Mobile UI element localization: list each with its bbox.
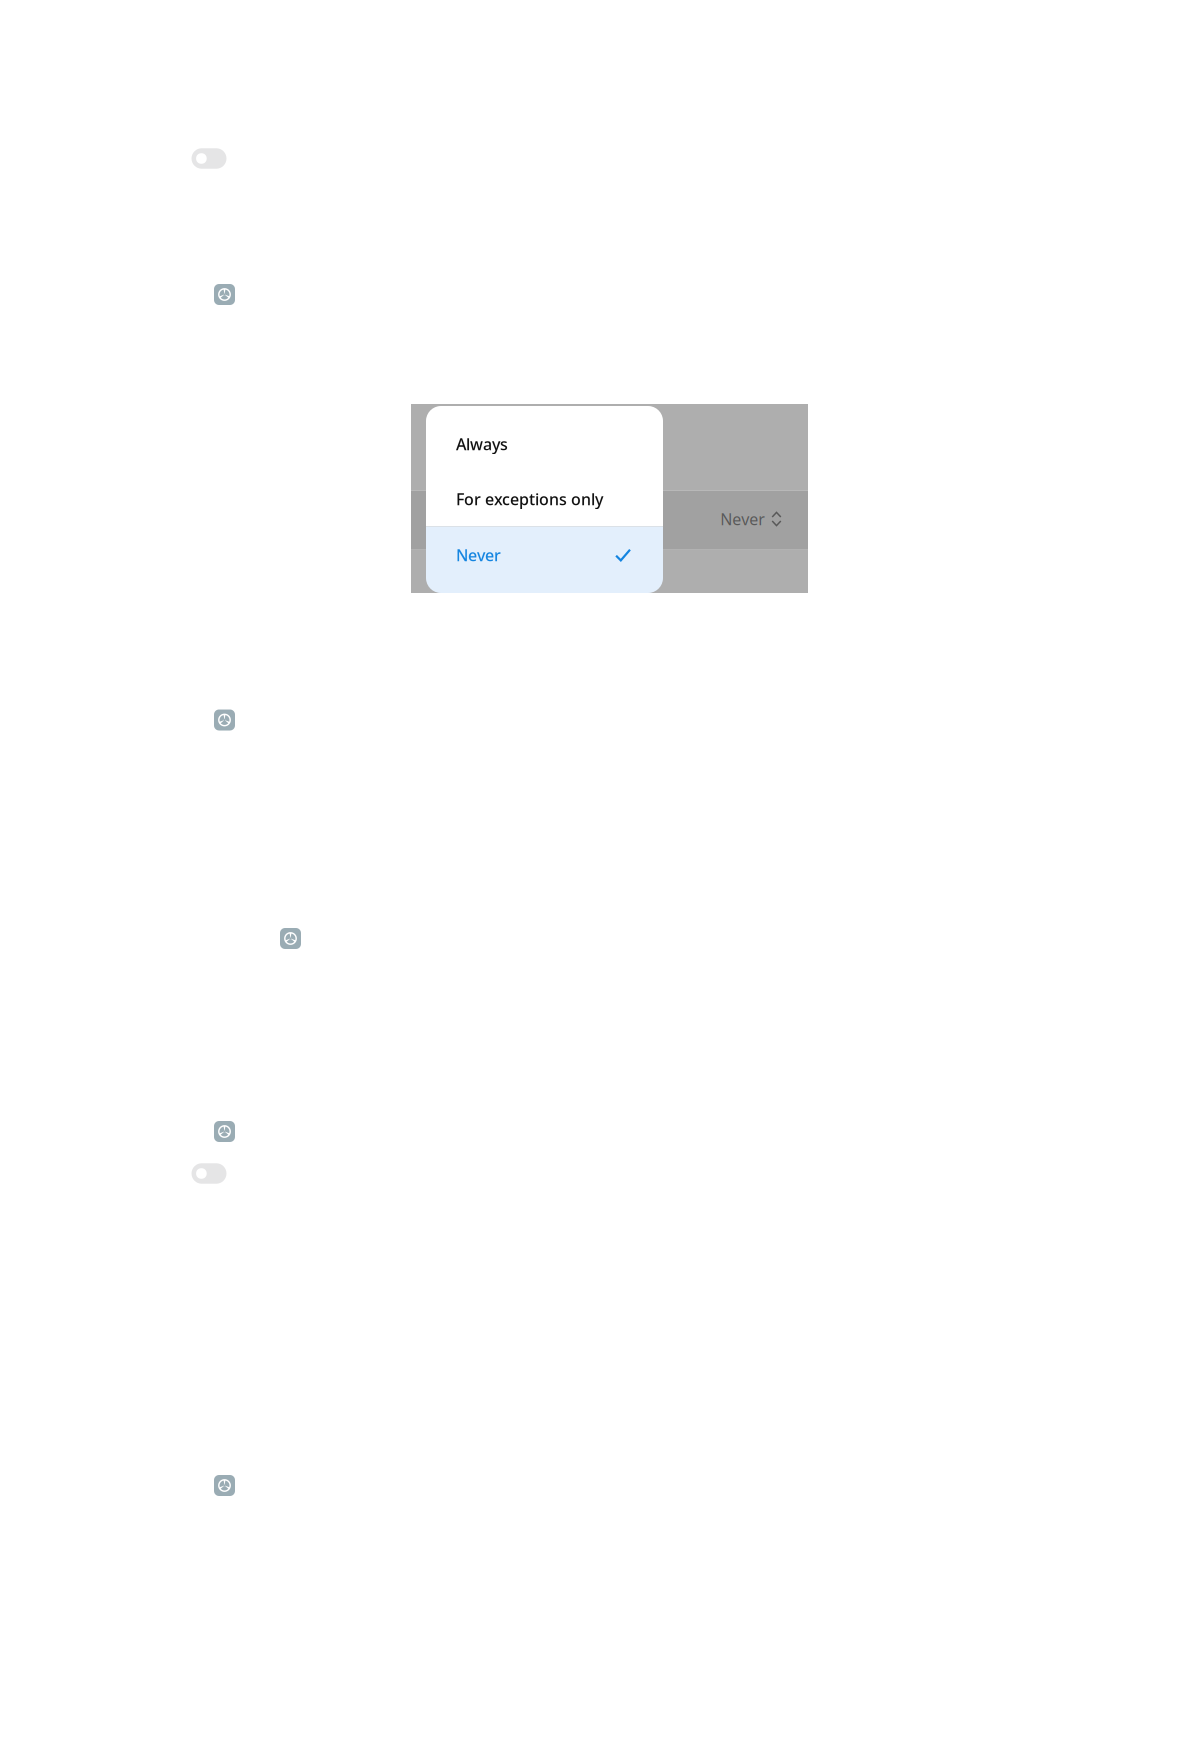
button[interactable]: Driving — [280, 928, 301, 949]
button[interactable]: Driving — [214, 1121, 235, 1142]
button[interactable]: Announce notifications — [191, 148, 226, 169]
staticText: Never — [456, 544, 501, 566]
staticText: For exceptions only — [456, 488, 603, 510]
button[interactable]: Driving — [214, 284, 235, 305]
staticText: Always — [456, 433, 508, 455]
button[interactable]: Activate with CarPlay — [191, 1163, 226, 1184]
button[interactable]: Driving — [214, 1475, 235, 1496]
button[interactable]: Driving — [214, 709, 235, 730]
staticText: Never — [720, 508, 765, 530]
button[interactable]: Always — [426, 414, 663, 474]
button[interactable]: For exceptions only — [426, 469, 663, 529]
button[interactable]: Never — [426, 525, 663, 585]
